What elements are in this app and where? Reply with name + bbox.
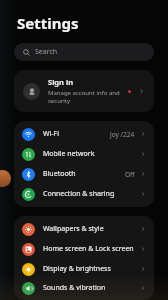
button[interactable]: Display & brightness	[14, 259, 154, 279]
button[interactable]: Home screen & Lock screen	[14, 239, 154, 259]
staticText: Sounds & vibration	[43, 283, 140, 293]
button[interactable]: Wallpapers & style	[14, 219, 154, 239]
staticText: Mobile network	[43, 149, 140, 159]
staticText: Home screen & Lock screen	[43, 244, 140, 254]
staticText: Display & brightness	[43, 264, 140, 274]
staticText: Manage account info and security	[48, 89, 120, 105]
staticText: Sign in	[48, 77, 74, 87]
button[interactable]: Wi-Fi	[14, 124, 154, 144]
staticText: Joy /224	[110, 130, 135, 139]
button[interactable]: Floating shortcut	[0, 170, 11, 187]
staticText: Wallpapers & style	[43, 224, 140, 234]
staticText: Connection & sharing	[43, 189, 140, 199]
staticText: Off	[125, 170, 135, 179]
staticText: Search	[35, 47, 58, 57]
staticText: Bluetooth	[43, 169, 125, 179]
button[interactable]: Sounds & vibration	[14, 279, 154, 297]
staticText: Settings	[17, 13, 79, 33]
button[interactable]: Bluetooth	[14, 164, 154, 184]
button[interactable]: Sign in	[14, 70, 154, 112]
button[interactable]: Connection & sharing	[14, 184, 154, 204]
button[interactable]: Search	[14, 43, 154, 61]
staticText: Wi-Fi	[43, 129, 110, 139]
button[interactable]: Mobile network	[14, 144, 154, 164]
